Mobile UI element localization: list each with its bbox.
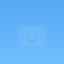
- button[interactable]: Show more: [18, 26, 45, 46]
